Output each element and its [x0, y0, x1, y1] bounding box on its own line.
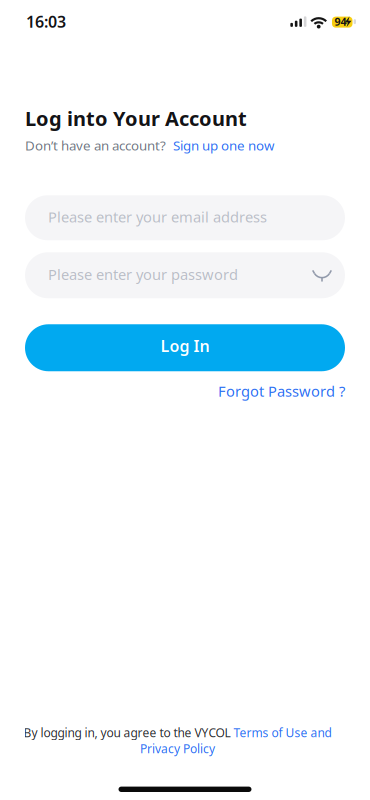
staticText: 16:03	[26, 11, 66, 32]
button[interactable]: Terms of Use and	[233, 725, 331, 741]
button[interactable]: Log In	[25, 324, 345, 371]
staticText: Log into Your Account	[25, 105, 247, 132]
button[interactable]: Privacy Policy	[140, 741, 215, 757]
button[interactable]: Forgot Password ?	[218, 381, 345, 401]
staticText: Sign up one now	[173, 137, 274, 154]
staticText: 94	[334, 14, 346, 29]
staticText: Please enter your email address	[48, 207, 267, 226]
button[interactable]: Sign up one now	[173, 137, 274, 154]
button[interactable]: Please enter your email address	[25, 195, 345, 240]
staticText: Terms of Use and	[233, 725, 331, 741]
staticText: Log In	[160, 335, 209, 356]
staticText: Please enter your password	[48, 264, 238, 284]
staticText: Don’t have an account?	[25, 137, 166, 154]
button[interactable]: Please enter your password	[25, 252, 345, 298]
button[interactable]	[312, 267, 332, 284]
staticText: Privacy Policy	[140, 741, 215, 757]
staticText: By logging in, you agree to the VYCOL	[23, 725, 233, 741]
staticText: Forgot Password ?	[218, 381, 345, 401]
